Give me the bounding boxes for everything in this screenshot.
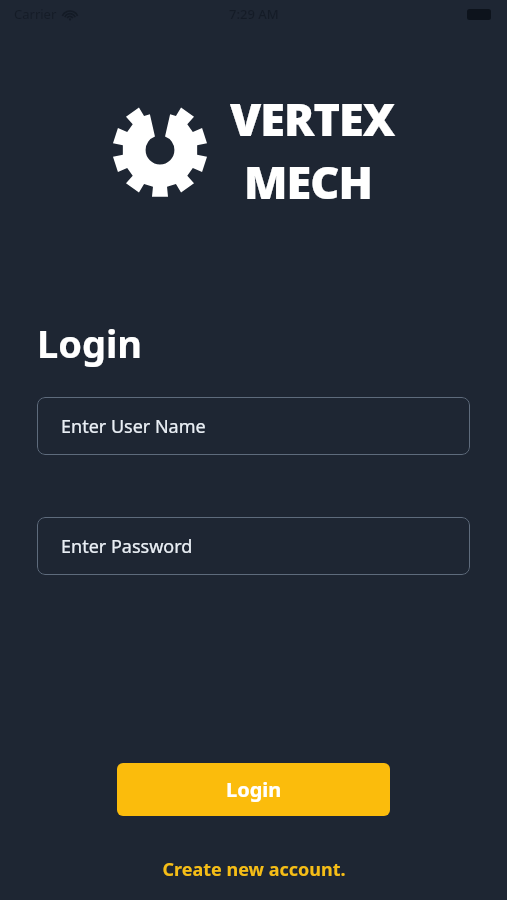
staticText: Enter Password (61, 534, 193, 559)
button[interactable]: Create new account. (154, 853, 354, 886)
staticText: VERTEX (230, 88, 395, 149)
button[interactable]: Enter User Name (37, 397, 470, 455)
staticText: MECH (244, 151, 372, 212)
button[interactable]: Login (117, 763, 390, 816)
staticText: Create new account. (162, 857, 346, 882)
staticText: Enter User Name (61, 414, 206, 439)
staticText: 7:29 AM (229, 5, 279, 23)
button[interactable]: Enter Password (37, 517, 470, 575)
staticText: Login (37, 317, 143, 369)
other: Vertex Mech logo (112, 102, 208, 198)
staticText: Carrier (14, 5, 57, 23)
staticText: Login (226, 776, 282, 803)
